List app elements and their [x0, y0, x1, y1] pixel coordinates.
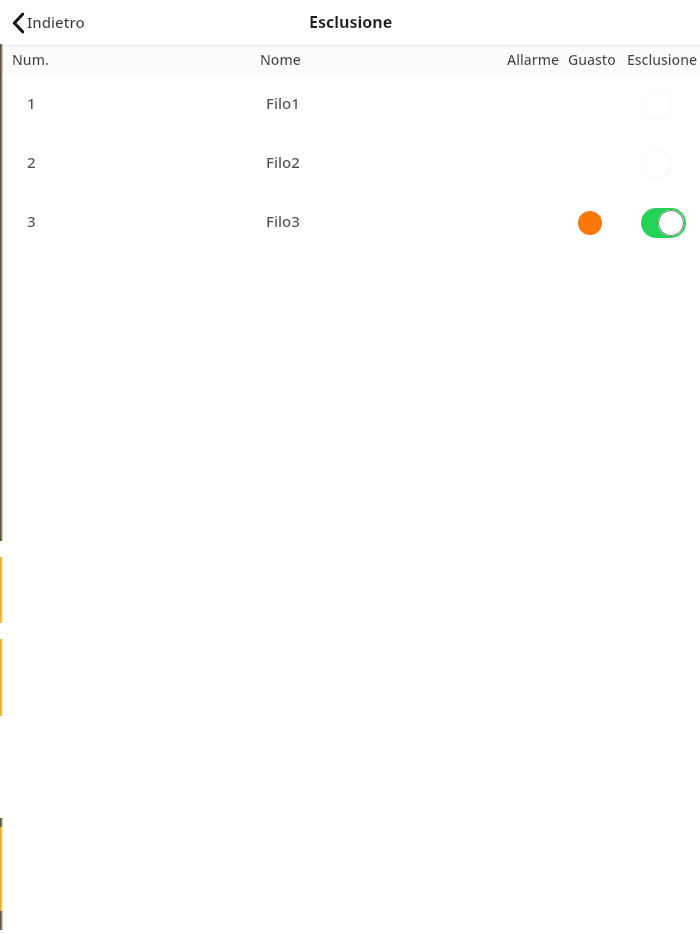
- staticText: Esclusione: [309, 11, 393, 33]
- staticText: Guasto: [568, 50, 616, 69]
- staticText: Filo2: [266, 152, 300, 172]
- staticText: 2: [27, 152, 36, 172]
- staticText: 3: [27, 211, 36, 231]
- staticText: Nome: [260, 50, 301, 69]
- staticText: Allarme: [507, 50, 559, 69]
- button[interactable]: Esclusione Filo3: [641, 208, 686, 238]
- button[interactable]: 3: [0, 194, 700, 253]
- staticText: Esclusione: [627, 50, 697, 69]
- button[interactable]: 2: [0, 135, 700, 194]
- button[interactable]: 1: [0, 76, 700, 135]
- staticText: Filo1: [266, 93, 300, 113]
- staticText: Indietro: [27, 12, 85, 32]
- button[interactable]: Indietro: [0, 7, 97, 39]
- staticText: Filo3: [266, 211, 300, 231]
- staticText: Num.: [12, 50, 49, 69]
- staticText: 1: [27, 93, 36, 113]
